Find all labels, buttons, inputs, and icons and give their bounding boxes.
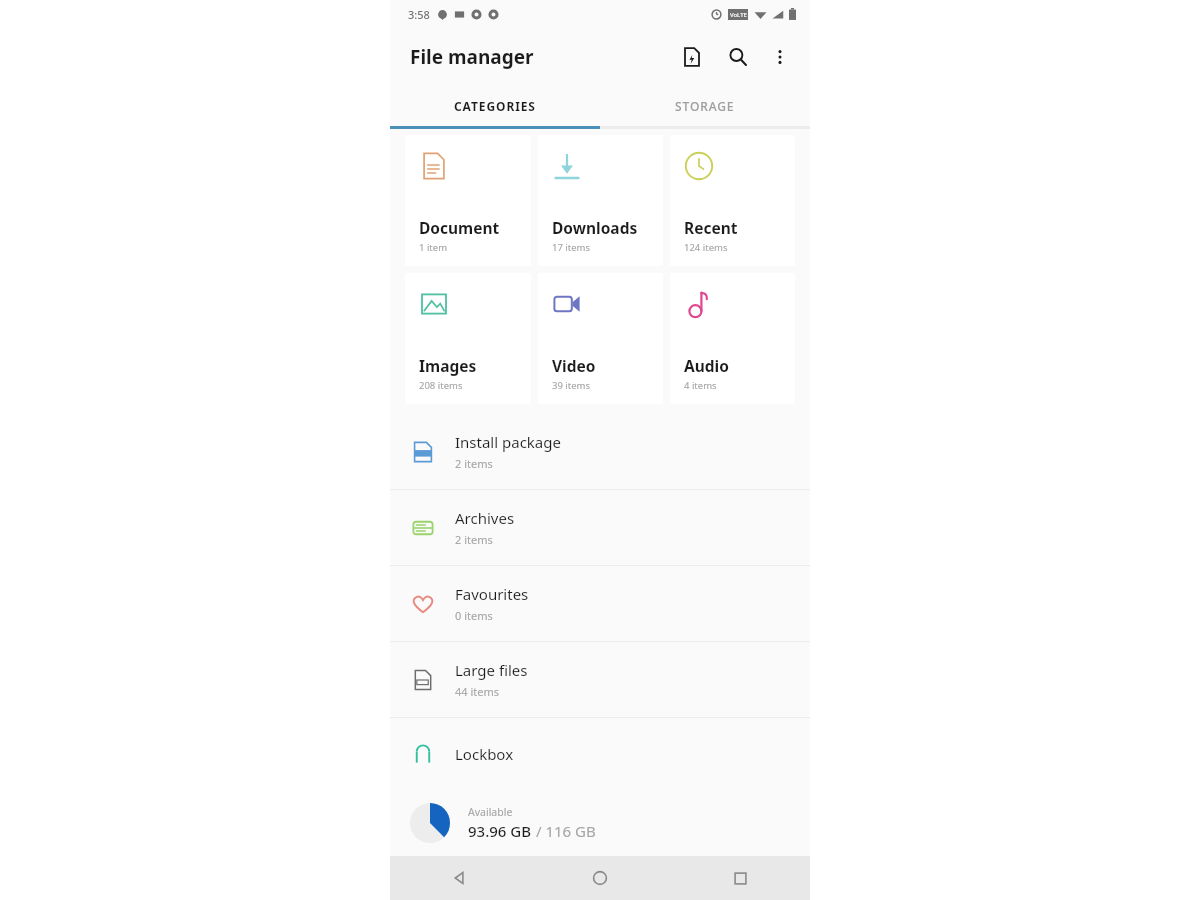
- button[interactable]: Lockbox: [390, 718, 810, 790]
- button[interactable]: Archives: [390, 490, 810, 565]
- button[interactable]: Large files: [390, 642, 810, 717]
- staticText: Video: [552, 355, 596, 376]
- button[interactable]: Back: [390, 856, 530, 900]
- button[interactable]: More options: [760, 37, 800, 77]
- button[interactable]: Audio: [670, 273, 795, 404]
- button[interactable]: CATEGORIES: [390, 86, 600, 126]
- button[interactable]: Home: [530, 856, 670, 900]
- staticText: 124 items: [684, 241, 728, 254]
- staticText: 39 items: [552, 379, 591, 392]
- staticText: Document: [419, 217, 500, 238]
- staticText: Images: [419, 355, 477, 376]
- staticText: / 116 GB: [532, 821, 596, 841]
- button[interactable]: Video: [538, 273, 663, 404]
- button[interactable]: Document: [405, 135, 531, 266]
- staticText: Downloads: [552, 217, 638, 238]
- staticText: 1 item: [419, 241, 448, 254]
- staticText: Audio: [684, 355, 729, 376]
- button[interactable]: Favourites: [390, 566, 810, 641]
- staticText: Large files: [455, 660, 528, 680]
- button[interactable]: STORAGE: [600, 86, 810, 126]
- button[interactable]: Images: [405, 273, 531, 404]
- button[interactable]: Search: [718, 37, 758, 77]
- staticText: Install package: [455, 432, 561, 452]
- staticText: Lockbox: [455, 744, 514, 764]
- staticText: File manager: [410, 44, 534, 70]
- staticText: Archives: [455, 508, 515, 528]
- staticText: Favourites: [455, 584, 529, 604]
- button[interactable]: Install package: [390, 414, 810, 489]
- staticText: 44 items: [455, 684, 500, 699]
- button[interactable]: Analyse storage: [672, 37, 712, 77]
- staticText: VoLTE: [730, 11, 747, 19]
- staticText: 2 items: [455, 456, 493, 471]
- staticText: 2 items: [455, 532, 493, 547]
- staticText: 93.96 GB: [468, 821, 532, 841]
- button[interactable]: Recent: [670, 135, 795, 266]
- staticText: 3:58: [408, 7, 430, 22]
- staticText: 208 items: [419, 379, 463, 392]
- staticText: 0 items: [455, 608, 493, 623]
- staticText: STORAGE: [675, 98, 735, 114]
- button[interactable]: Recents: [670, 856, 810, 900]
- staticText: 17 items: [552, 241, 591, 254]
- button[interactable]: Downloads: [538, 135, 663, 266]
- staticText: Recent: [684, 217, 738, 238]
- staticText: Available: [468, 805, 513, 819]
- staticText: CATEGORIES: [454, 98, 536, 114]
- staticText: 4 items: [684, 379, 717, 392]
